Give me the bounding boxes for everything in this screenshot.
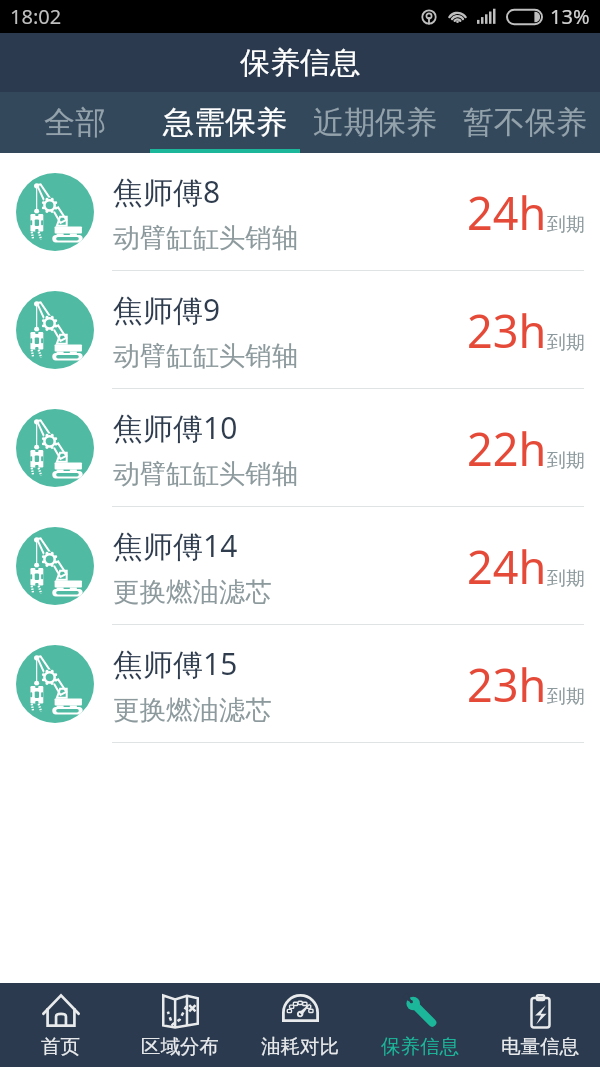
button[interactable]: 急需保养 (150, 92, 300, 153)
staticText: 到期 (547, 685, 585, 709)
button[interactable]: 暂不保养 (450, 92, 600, 153)
staticText: 更换燃油滤芯 (113, 575, 272, 608)
staticText: 22h (467, 418, 547, 479)
staticText: 到期 (547, 331, 585, 355)
staticText: 23h (467, 654, 547, 715)
staticText: 焦师傅9 (113, 289, 221, 330)
button[interactable]: 焦师傅10 (0, 389, 600, 507)
button[interactable]: 电量信息 (480, 983, 600, 1067)
staticText: 24h (467, 182, 547, 243)
button[interactable]: 首页 (0, 983, 120, 1067)
staticText: 暂不保养 (463, 103, 587, 142)
staticText: 更换燃油滤芯 (113, 693, 272, 726)
staticText: 动臂缸缸头销轴 (113, 457, 299, 490)
button[interactable]: 油耗对比 (240, 983, 360, 1067)
staticText: 保养信息 (381, 1034, 459, 1059)
button[interactable]: 焦师傅9 (0, 271, 600, 389)
button[interactable]: 区域分布 (120, 983, 240, 1067)
staticText: 到期 (547, 449, 585, 473)
staticText: 动臂缸缸头销轴 (113, 221, 299, 254)
button[interactable]: 全部 (0, 92, 150, 153)
staticText: 13% (550, 3, 590, 30)
staticText: 急需保养 (163, 103, 287, 142)
staticText: 保养信息 (240, 44, 360, 82)
staticText: 油耗对比 (261, 1034, 339, 1059)
staticText: 焦师傅10 (113, 407, 238, 448)
staticText: 24h (467, 536, 547, 597)
staticText: 23h (467, 300, 547, 361)
staticText: 近期保养 (313, 103, 437, 142)
staticText: 动臂缸缸头销轴 (113, 339, 299, 372)
staticText: 全部 (44, 103, 106, 142)
button[interactable]: 焦师傅14 (0, 507, 600, 625)
button[interactable]: 保养信息 (360, 983, 480, 1067)
button[interactable]: 近期保养 (300, 92, 450, 153)
button[interactable]: 焦师傅8 (0, 153, 600, 271)
staticText: 电量信息 (501, 1034, 579, 1059)
staticText: 18:02 (10, 3, 62, 30)
staticText: 到期 (547, 213, 585, 237)
staticText: 焦师傅8 (113, 171, 221, 212)
staticText: 区域分布 (141, 1034, 219, 1059)
button[interactable]: 焦师傅15 (0, 625, 600, 743)
staticText: 焦师傅15 (113, 643, 238, 684)
staticText: 到期 (547, 567, 585, 591)
staticText: 首页 (41, 1034, 80, 1059)
staticText: 焦师傅14 (113, 525, 238, 566)
